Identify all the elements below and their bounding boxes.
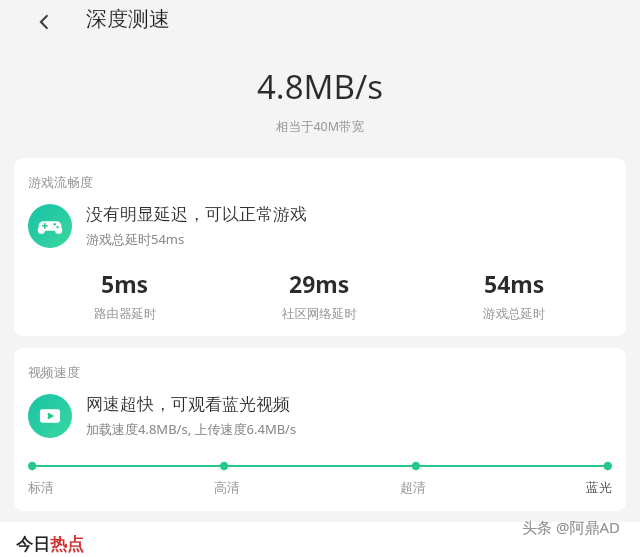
button[interactable]: 标清	[28, 479, 54, 495]
staticText: 5ms	[101, 268, 149, 299]
staticText: 路由器延时	[94, 306, 157, 322]
staticText: 游戏流畅度	[28, 174, 93, 190]
staticText: 游戏总延时54ms	[86, 230, 185, 248]
staticText: 社区网络延时	[282, 306, 357, 322]
button[interactable]: 视频速度	[14, 348, 626, 511]
staticText: 相当于40M带宽	[0, 118, 640, 135]
other: Game	[28, 204, 72, 248]
button[interactable]: 29ms	[222, 268, 417, 322]
button[interactable]: 高清	[214, 479, 240, 495]
staticText: 54ms	[484, 268, 545, 299]
button[interactable]: 游戏流畅度	[14, 158, 626, 336]
other: Video	[28, 394, 72, 438]
staticText: 网速超快，可观看蓝光视频	[86, 394, 290, 415]
button[interactable]: 蓝光	[586, 479, 612, 495]
staticText: 头条 @阿鼎AD	[522, 517, 620, 537]
staticText: 视频速度	[28, 364, 80, 380]
staticText: 4.8MB/s	[0, 64, 640, 109]
button[interactable]: 5ms	[28, 268, 222, 322]
staticText: 29ms	[289, 268, 350, 299]
staticText: 没有明显延迟，可以正常游戏	[86, 204, 307, 225]
staticText: 游戏总延时	[483, 306, 546, 322]
staticText: 加载速度4.8MB/s, 上传速度6.4MB/s	[86, 420, 297, 438]
button[interactable]: 54ms	[417, 268, 612, 322]
button[interactable]: 今日热点	[16, 534, 84, 555]
staticText: 深度测速	[86, 6, 170, 32]
button[interactable]: Back	[24, 0, 64, 44]
button[interactable]: 超清	[400, 479, 426, 495]
